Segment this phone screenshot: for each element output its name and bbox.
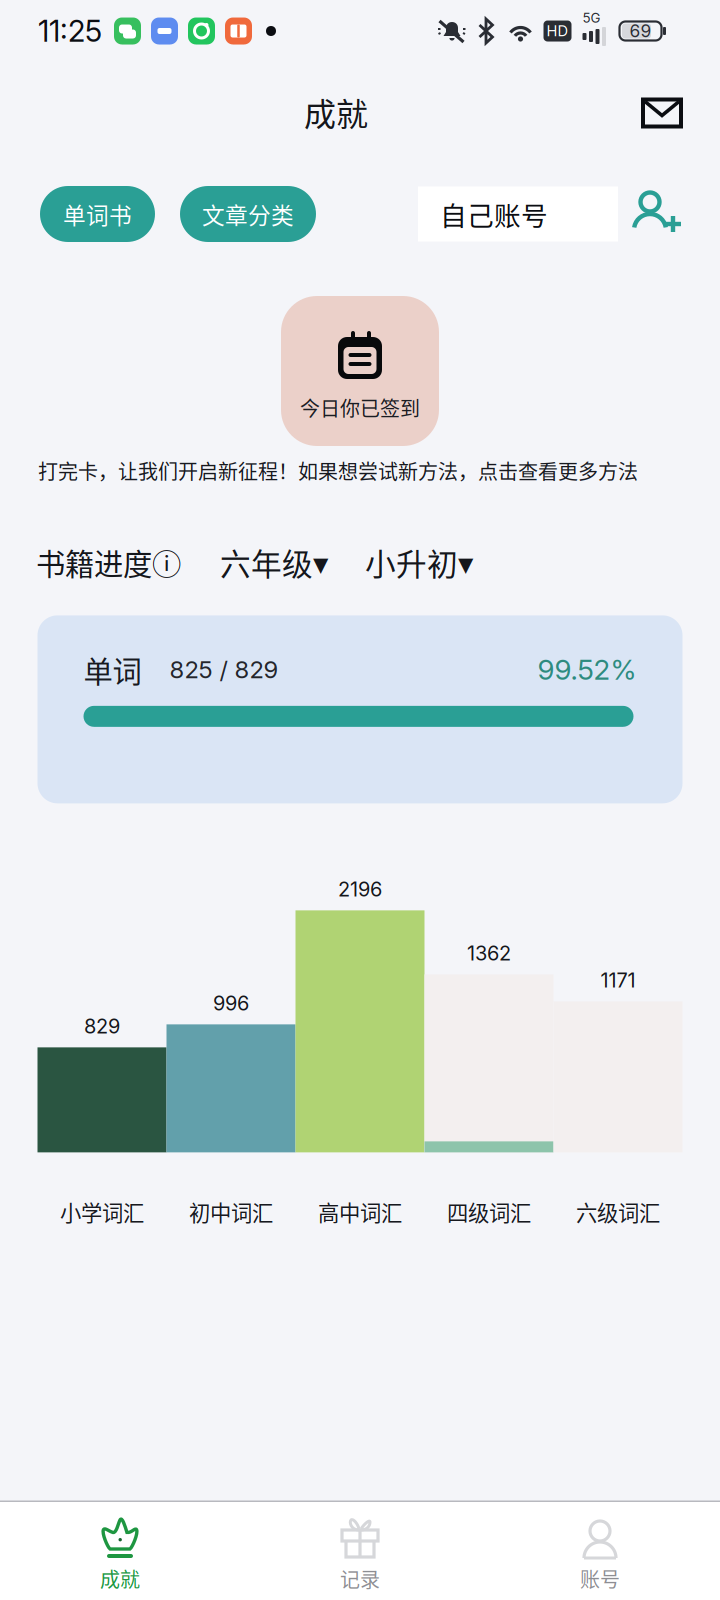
staticText: 初中词汇 <box>189 1196 273 1227</box>
staticText: HD <box>546 22 568 40</box>
button[interactable]: 文章分类 <box>180 186 316 242</box>
button[interactable]: 成就 <box>0 1502 240 1600</box>
staticText: 11:25 <box>38 13 102 49</box>
staticText: 六年级▾ <box>220 540 328 584</box>
button[interactable]: 自己账号 <box>418 186 618 241</box>
staticText: 书籍进度ⓘ <box>36 541 181 583</box>
staticText: 1171 <box>600 968 635 992</box>
staticText: 小升初▾ <box>365 540 473 584</box>
staticText: 69 <box>629 20 651 41</box>
button[interactable]: 记录 <box>240 1502 480 1600</box>
staticText: 账号 <box>580 1564 620 1593</box>
staticText: 六级词汇 <box>576 1196 660 1227</box>
staticText: 小学词汇 <box>60 1196 144 1227</box>
staticText: 99.52% <box>537 653 636 687</box>
staticText: 单词书 <box>63 198 132 230</box>
staticText: 文章分类 <box>202 198 294 230</box>
staticText: 996 <box>213 991 249 1015</box>
button[interactable]: Add account <box>632 188 684 240</box>
staticText: 成就 <box>304 89 368 135</box>
button[interactable]: 六年级▾ <box>220 540 328 584</box>
button[interactable]: 今日你已签到 <box>281 296 439 446</box>
staticText: 829 <box>84 1014 120 1038</box>
staticText: 打完卡，让我们开启新征程！如果想尝试新方法，点击查看更多方法 <box>38 456 638 485</box>
button[interactable]: 小升初▾ <box>365 540 473 584</box>
staticText: 高中词汇 <box>318 1196 402 1227</box>
staticText: 四级词汇 <box>447 1196 531 1227</box>
button[interactable]: Messages <box>634 79 690 125</box>
staticText: 5G <box>582 10 600 26</box>
button[interactable]: 单词书 <box>40 186 155 242</box>
staticText: 记录 <box>340 1564 380 1593</box>
staticText: 单词 <box>83 648 141 691</box>
staticText: 825 / 829 <box>169 655 278 684</box>
staticText: 今日你已签到 <box>300 393 420 422</box>
staticText: 1362 <box>467 941 511 965</box>
staticText: 成就 <box>100 1564 140 1593</box>
staticText: 自己账号 <box>440 195 548 233</box>
button[interactable]: 账号 <box>480 1502 720 1600</box>
staticText: 2196 <box>338 877 382 901</box>
